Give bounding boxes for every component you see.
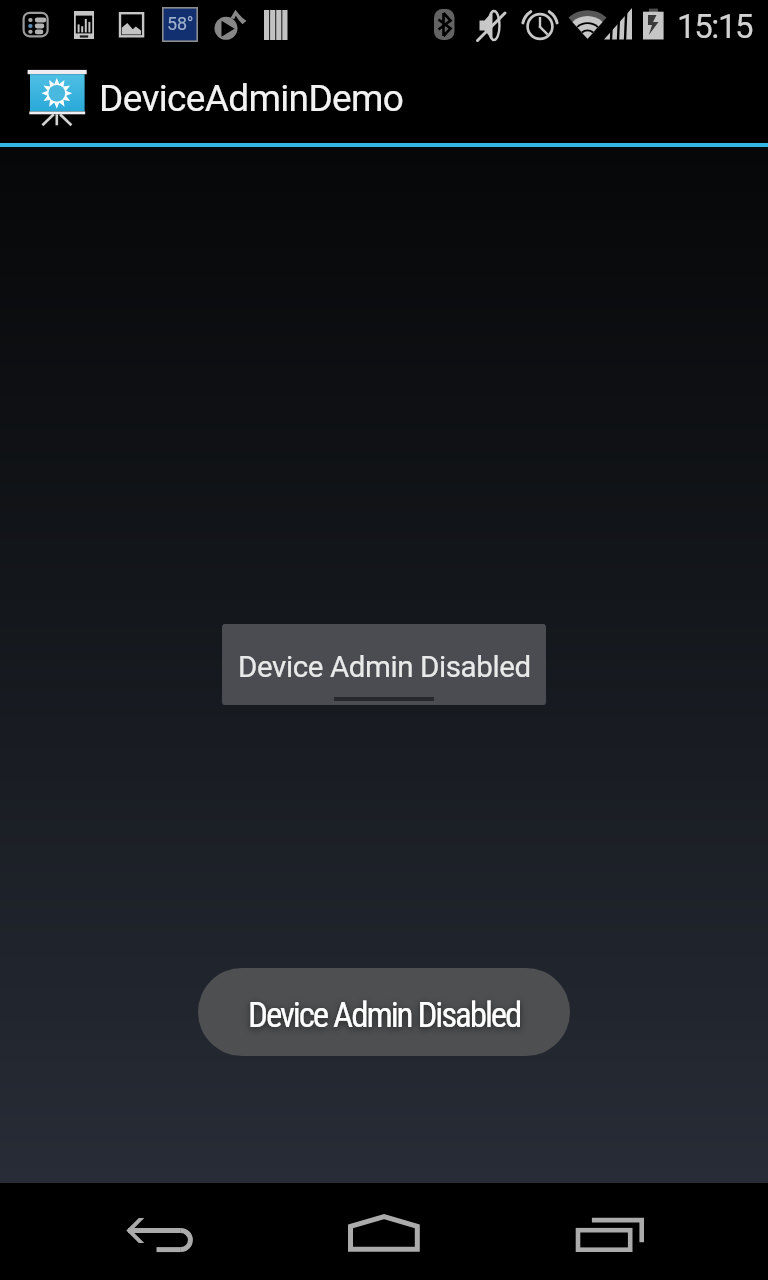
staticText: DeviceAdminDemo [99,77,404,120]
button[interactable]: Recent apps [544,1183,672,1280]
button[interactable]: Device Admin Disabled [198,968,570,1056]
button[interactable]: Home [320,1183,448,1280]
staticText: 15:15 [677,7,753,46]
button[interactable]: Back [96,1183,224,1280]
staticText: 58° [167,13,194,34]
staticText: Device Admin Disabled [248,995,521,1036]
staticText: Device Admin Disabled [238,650,531,685]
